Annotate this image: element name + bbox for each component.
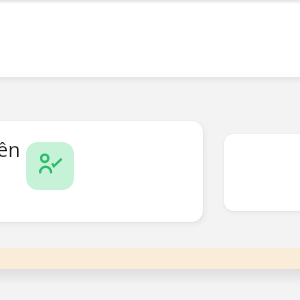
staticText: Xác thực tên: [0, 136, 21, 163]
button[interactable]: Xác thực tên: [0, 121, 203, 222]
button[interactable]: Verify name: [26, 142, 74, 190]
